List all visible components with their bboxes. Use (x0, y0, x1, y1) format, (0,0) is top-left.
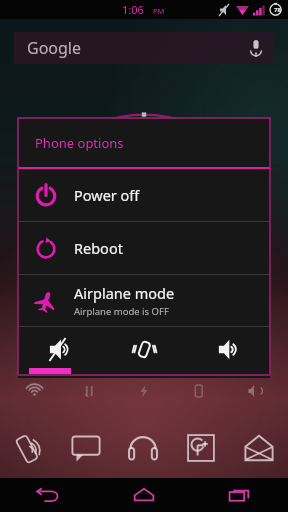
button[interactable]: Google Plus (172, 422, 230, 474)
button[interactable]: Music (114, 422, 172, 474)
button[interactable]: Back (0, 478, 96, 512)
staticText: 1:06 (122, 2, 144, 17)
button[interactable]: Recents (192, 478, 288, 512)
staticText: Power off (74, 185, 140, 205)
staticText: Phone options (35, 134, 124, 152)
button[interactable]: Google (14, 32, 274, 64)
button[interactable]: Sound on (186, 327, 270, 378)
staticText: 78 (274, 6, 281, 14)
button[interactable]: Home (96, 478, 192, 512)
button[interactable]: Messaging (230, 422, 288, 474)
button[interactable]: Android Beam (0, 422, 57, 474)
button[interactable]: Reboot (18, 222, 270, 274)
button[interactable]: Airplane mode (18, 275, 270, 326)
button[interactable]: Vibrate mode (102, 327, 186, 378)
other: Voice search (250, 40, 262, 57)
staticText: Airplane mode (74, 283, 175, 303)
button[interactable]: Power off (18, 169, 270, 221)
staticText: Reboot (74, 238, 123, 258)
staticText: Google (27, 37, 82, 59)
button[interactable]: Talk (57, 422, 114, 474)
staticText: Airplane mode is OFF (74, 305, 169, 318)
button[interactable]: Silent mode (18, 327, 102, 378)
staticText: PM (153, 6, 165, 16)
